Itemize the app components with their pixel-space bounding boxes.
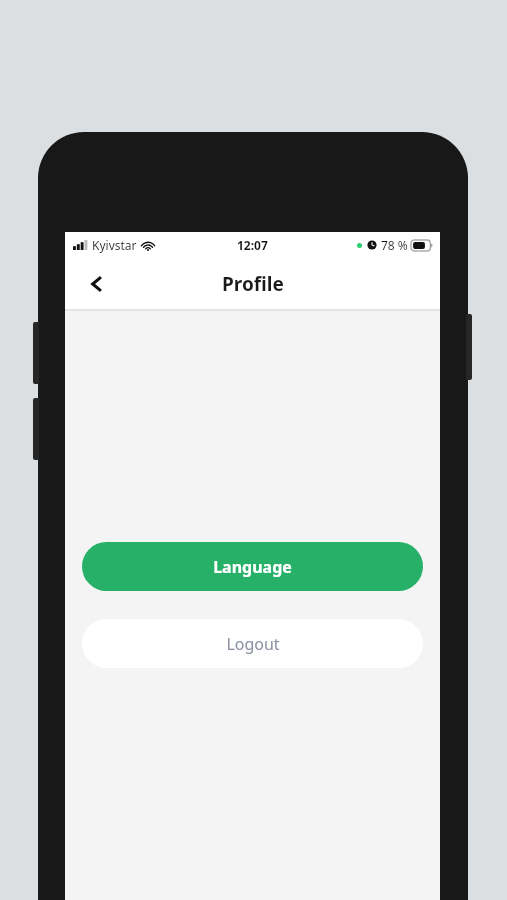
staticText: Kyivstar — [92, 237, 137, 253]
staticText: 12:07 — [237, 237, 268, 253]
button[interactable]: Logout — [82, 619, 423, 668]
staticText: Profile — [222, 271, 284, 297]
button[interactable]: Language — [82, 542, 423, 591]
button[interactable]: Back — [77, 264, 117, 304]
staticText: Logout — [226, 633, 280, 655]
staticText: Language — [213, 556, 292, 578]
staticText: 78 % — [381, 237, 408, 253]
